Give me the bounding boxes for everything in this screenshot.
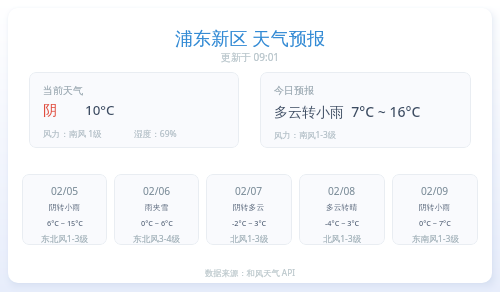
staticText: 东南风1-3级 bbox=[412, 233, 459, 245]
staticText: 0°C ~ 7°C bbox=[419, 218, 451, 228]
staticText: 当前天气 bbox=[43, 84, 83, 97]
staticText: 浦东新区 天气预报 bbox=[8, 26, 492, 51]
button[interactable]: 今日预报 bbox=[260, 72, 471, 148]
staticText: 雨夹雪 bbox=[145, 202, 169, 212]
staticText: 阴 bbox=[43, 102, 57, 120]
staticText: 阴转小雨 bbox=[49, 202, 81, 212]
button[interactable]: 02/07 bbox=[206, 174, 292, 245]
staticText: 湿度：69% bbox=[134, 128, 177, 140]
staticText: 北风1-3级 bbox=[323, 233, 362, 245]
staticText: 02/05 bbox=[51, 184, 79, 198]
staticText: 0°C ~ 6°C bbox=[141, 218, 173, 228]
staticText: -4°C ~ 3°C bbox=[325, 218, 360, 228]
staticText: 北风1-3级 bbox=[230, 233, 269, 245]
staticText: 02/08 bbox=[328, 184, 356, 198]
button[interactable]: 02/09 bbox=[392, 174, 478, 245]
staticText: 风力：南风1-3级 bbox=[274, 129, 336, 140]
staticText: 02/07 bbox=[235, 184, 263, 198]
staticText: 更新于 09:01 bbox=[8, 50, 492, 64]
staticText: 阴转多云 bbox=[233, 202, 265, 212]
staticText: 阴转小雨 bbox=[419, 202, 451, 212]
staticText: -2°C ~ 3°C bbox=[232, 218, 267, 228]
staticText: 02/06 bbox=[143, 184, 171, 198]
staticText: 今日预报 bbox=[274, 84, 314, 97]
staticText: 数据来源：和风天气 API bbox=[8, 267, 492, 278]
button[interactable]: 02/08 bbox=[299, 174, 385, 245]
staticText: 东北风1-3级 bbox=[41, 233, 88, 245]
staticText: 多云转晴 bbox=[326, 202, 358, 212]
staticText: 10°C bbox=[85, 101, 115, 119]
staticText: 6°C ~ 15°C bbox=[47, 218, 83, 228]
button[interactable]: 当前天气 bbox=[29, 72, 239, 148]
button[interactable]: 02/06 bbox=[114, 174, 199, 245]
staticText: 多云转小雨 7°C ~ 16°C bbox=[274, 102, 421, 121]
staticText: 东北风3-4级 bbox=[133, 233, 180, 245]
staticText: 风力：南风 1级 bbox=[43, 128, 102, 140]
button[interactable]: 02/05 bbox=[22, 174, 107, 245]
staticText: 02/09 bbox=[421, 184, 449, 198]
